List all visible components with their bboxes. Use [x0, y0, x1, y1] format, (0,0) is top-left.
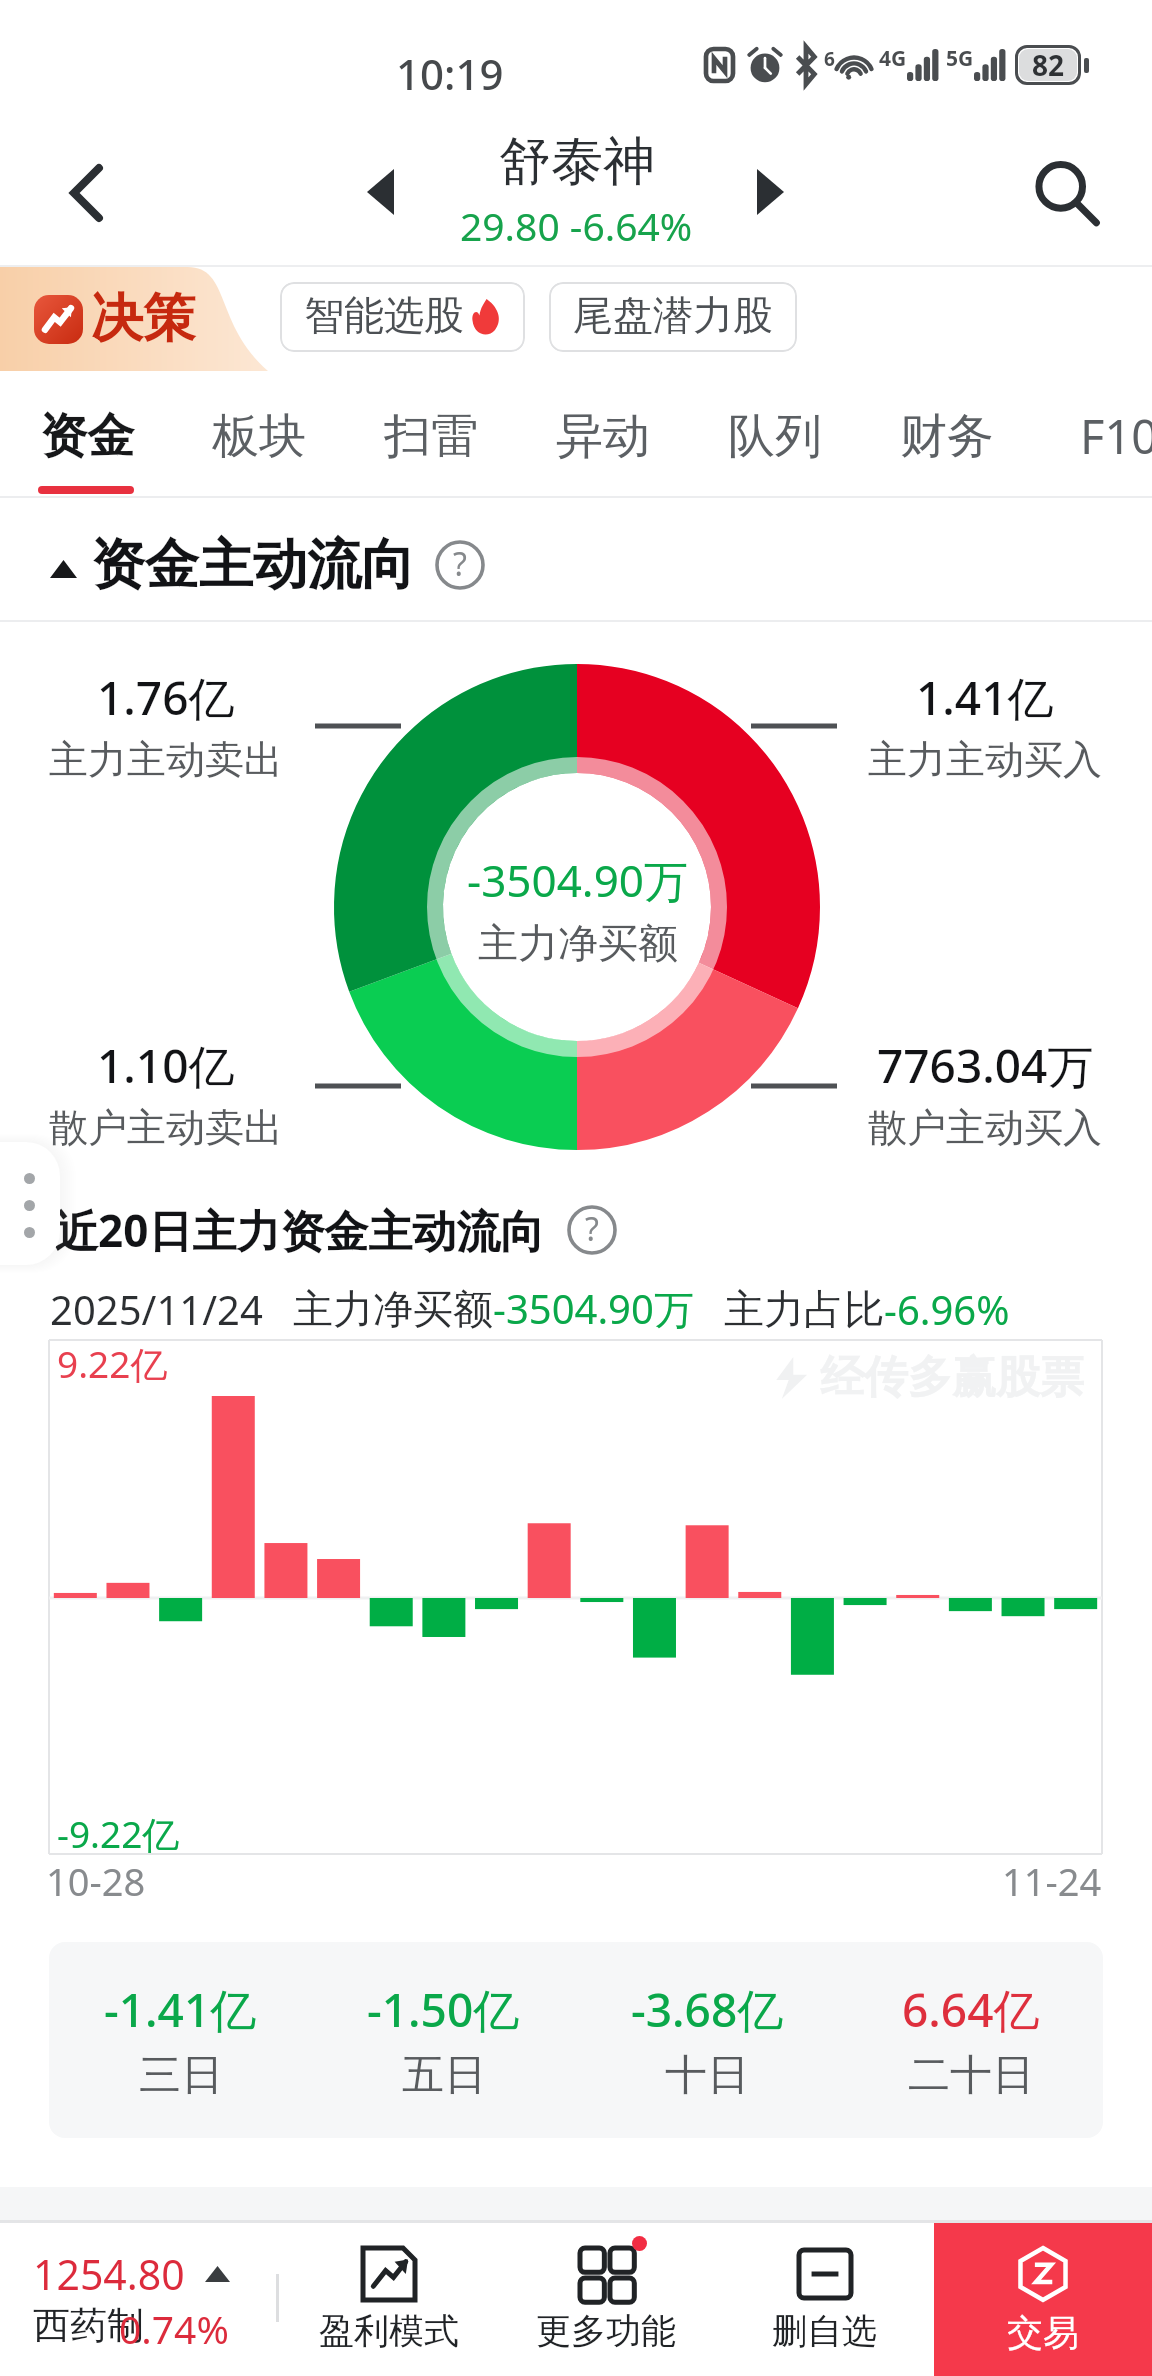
staticText: 二十日: [908, 2049, 1034, 2102]
staticText: 5G: [946, 44, 974, 73]
staticText: 散户主动买入: [868, 1103, 1102, 1152]
button[interactable]: 尾盘潜力股: [549, 282, 797, 352]
staticText: 1.76亿: [97, 666, 235, 729]
staticText: 资金: [40, 407, 134, 466]
staticText: 财务: [900, 407, 994, 466]
staticText: 尾盘潜力股: [573, 290, 773, 340]
staticText: 主力净买额: [293, 1284, 493, 1334]
staticText: 异动: [556, 407, 650, 466]
staticText: 散户主动卖出: [49, 1103, 283, 1152]
button[interactable]: 1254.80: [33, 2246, 230, 2355]
staticText: 6.64亿: [902, 1978, 1040, 2041]
staticText: -1.50亿: [367, 1978, 520, 2041]
button[interactable]: 板块: [179, 371, 339, 497]
staticText: 29.80 -6.64%: [460, 199, 693, 252]
staticText: F10: [1080, 404, 1152, 468]
button[interactable]: 扫雷: [351, 371, 511, 497]
staticText: 10:19: [396, 45, 504, 102]
staticText: 11-24: [1002, 1855, 1102, 1907]
button[interactable]: 6.64亿: [839, 1942, 1103, 2138]
staticText: 主力主动卖出: [49, 735, 283, 784]
button[interactable]: Back: [30, 137, 142, 249]
staticText: 五日: [402, 2049, 486, 2102]
staticText: ?: [453, 542, 467, 586]
button[interactable]: 更多功能: [506, 2223, 706, 2376]
staticText: 经传多赢股票: [820, 1350, 1084, 1405]
staticText: 智能选股: [304, 290, 464, 340]
button[interactable]: 交易: [934, 2223, 1152, 2376]
button[interactable]: Help: [435, 540, 485, 590]
staticText: 1254.80: [33, 2246, 185, 2302]
staticText: 舒泰神: [499, 129, 655, 195]
staticText: -3.68亿: [631, 1978, 784, 2041]
button[interactable]: -1.41亿: [49, 1942, 312, 2138]
staticText: -3504.90万: [493, 1281, 694, 1336]
button[interactable]: 盈利模式: [289, 2223, 489, 2376]
staticText: -3504.90万: [467, 850, 688, 910]
staticText: 4G: [879, 44, 907, 73]
button[interactable]: 删自选: [724, 2223, 924, 2376]
staticText: 主力占比: [724, 1284, 884, 1334]
button[interactable]: F10: [1039, 371, 1152, 497]
staticText: 近20日主力资金主动流向: [54, 1200, 545, 1260]
button[interactable]: 资金: [7, 371, 167, 497]
button[interactable]: Next stock: [730, 152, 810, 232]
button[interactable]: 异动: [523, 371, 683, 497]
staticText: -9.22亿: [57, 1808, 180, 1859]
staticText: ?: [585, 1207, 599, 1251]
button[interactable]: Search: [1010, 137, 1122, 249]
staticText: 更多功能: [536, 2309, 676, 2353]
button[interactable]: Help: [567, 1205, 617, 1255]
staticText: 队列: [728, 407, 822, 466]
button[interactable]: 1.41亿: [868, 666, 1102, 784]
staticText: 9.22亿: [57, 1338, 168, 1389]
staticText: 扫雷: [384, 407, 478, 466]
staticText: 盈利模式: [319, 2309, 459, 2353]
staticText: 三日: [139, 2049, 223, 2102]
staticText: 主力净买额: [478, 918, 678, 968]
button[interactable]: 决策: [0, 267, 265, 371]
staticText: 主力主动买入: [868, 735, 1102, 784]
staticText: 交易: [1007, 2310, 1079, 2355]
staticText: 2025/11/24: [50, 1282, 263, 1336]
button[interactable]: 1.76亿: [49, 666, 283, 784]
button[interactable]: Previous stock: [340, 152, 420, 232]
staticText: 删自选: [772, 2309, 877, 2353]
staticText: 82: [1032, 46, 1065, 84]
staticText: 决策: [91, 286, 195, 352]
staticText: 7763.04万: [877, 1034, 1094, 1097]
button[interactable]: -1.50亿: [312, 1942, 575, 2138]
button[interactable]: 财务: [867, 371, 1027, 497]
staticText: -1.41亿: [104, 1978, 257, 2041]
button[interactable]: 队列: [695, 371, 855, 497]
staticText: 0.74%: [119, 2302, 229, 2355]
staticText: 板块: [212, 407, 306, 466]
staticText: 6: [824, 46, 835, 72]
staticText: 1.41亿: [916, 666, 1054, 729]
button[interactable]: 1.10亿: [49, 1034, 283, 1152]
button[interactable]: 智能选股: [280, 282, 525, 352]
staticText: 资金主动流向: [91, 531, 415, 599]
button[interactable]: 7763.04万: [868, 1034, 1102, 1152]
staticText: -6.96%: [884, 1282, 1010, 1336]
button[interactable]: -3.68亿: [575, 1942, 839, 2138]
staticText: 10-28: [46, 1855, 146, 1907]
staticText: 西药制: [33, 2302, 144, 2349]
button[interactable]: Quick menu: [0, 1142, 60, 1265]
staticText: 1.10亿: [97, 1034, 235, 1097]
staticText: 十日: [665, 2049, 749, 2102]
